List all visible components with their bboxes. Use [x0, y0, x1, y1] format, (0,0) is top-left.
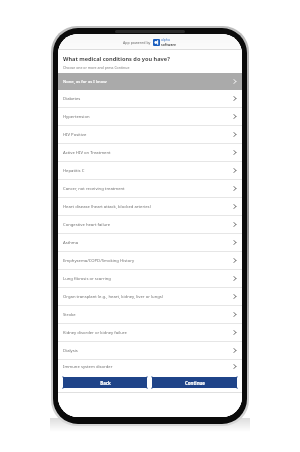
button[interactable]: Hypertension — [58, 108, 242, 125]
button[interactable]: Back — [62, 376, 148, 389]
button[interactable]: Immune system disorder — [58, 360, 242, 373]
button[interactable]: Asthma — [58, 234, 242, 251]
staticText: alpha — [161, 37, 170, 42]
button[interactable]: Emphysema/COPD/Smoking History — [58, 252, 242, 269]
button[interactable]: Heart disease (heart attack, blocked art… — [58, 198, 242, 215]
button[interactable]: HIV Positive — [58, 126, 242, 143]
staticText: Cancer, not receiving treatment — [63, 186, 233, 192]
button[interactable]: Diabetes — [58, 90, 242, 107]
staticText: What medical conditions do you have? — [63, 55, 170, 63]
staticText: Congestive heart failure — [63, 222, 233, 228]
staticText: None, as far as I know — [63, 79, 233, 85]
staticText: Dialysis — [63, 348, 233, 354]
staticText: Active HIV on Treatment — [63, 150, 233, 156]
staticText: Back — [100, 380, 111, 386]
staticText: Stroke — [63, 312, 233, 318]
staticText: software — [161, 42, 177, 47]
button[interactable]: Continue — [151, 376, 238, 389]
staticText: Organ transplant (e.g., heart, kidney, l… — [63, 294, 233, 300]
button[interactable]: None, as far as I know — [58, 73, 242, 90]
staticText: Emphysema/COPD/Smoking History — [63, 258, 233, 264]
staticText: Diabetes — [63, 96, 233, 102]
button[interactable]: Hepatitis C — [58, 162, 242, 179]
other: Alpha Software logo — [153, 37, 177, 47]
staticText: Heart disease (heart attack, blocked art… — [63, 204, 233, 210]
staticText: Hypertension — [63, 114, 233, 120]
button[interactable]: Kidney disorder or kidney failure — [58, 324, 242, 341]
button[interactable]: Congestive heart failure — [58, 216, 242, 233]
staticText: Lung fibrosis or scarring — [63, 276, 233, 282]
button[interactable]: Lung fibrosis or scarring — [58, 270, 242, 287]
staticText: Continue — [185, 380, 205, 386]
button[interactable]: Dialysis — [58, 342, 242, 359]
button[interactable]: Organ transplant (e.g., heart, kidney, l… — [58, 288, 242, 305]
staticText: Asthma — [63, 240, 233, 246]
staticText: HIV Positive — [63, 132, 233, 138]
staticText: Choose one or more and press Continue — [63, 65, 130, 70]
staticText: App powered by — [123, 40, 151, 45]
staticText: Immune system disorder — [63, 364, 233, 370]
button[interactable]: Cancer, not receiving treatment — [58, 180, 242, 197]
button[interactable]: Stroke — [58, 306, 242, 323]
staticText: Hepatitis C — [63, 168, 233, 174]
button[interactable]: Active HIV on Treatment — [58, 144, 242, 161]
staticText: Kidney disorder or kidney failure — [63, 330, 233, 336]
